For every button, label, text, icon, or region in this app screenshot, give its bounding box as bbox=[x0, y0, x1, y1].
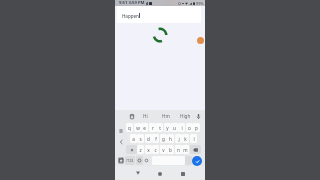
button[interactable]: Happen bbox=[117, 6, 201, 23]
button[interactable]: Enter bbox=[192, 156, 202, 166]
staticText: 99% bbox=[196, 1, 204, 6]
staticText: x bbox=[147, 147, 150, 153]
staticText: h bbox=[169, 136, 172, 142]
staticText: l bbox=[193, 136, 195, 142]
staticText: e bbox=[143, 125, 146, 131]
button[interactable]: p bbox=[193, 123, 200, 132]
staticText: j bbox=[178, 136, 180, 142]
button[interactable]: m bbox=[182, 145, 189, 154]
button[interactable]: f bbox=[152, 134, 159, 143]
button[interactable]: o bbox=[186, 123, 193, 132]
button[interactable]: y bbox=[164, 123, 171, 132]
button[interactable]: h bbox=[167, 134, 174, 143]
button[interactable]: c bbox=[152, 145, 159, 154]
button[interactable]: k bbox=[182, 134, 189, 143]
staticText: Hm bbox=[162, 113, 170, 119]
button[interactable]: e bbox=[141, 123, 148, 132]
button[interactable]: d bbox=[145, 134, 152, 143]
staticText: q bbox=[128, 125, 131, 131]
button[interactable]: Home bbox=[154, 168, 166, 180]
button[interactable]: Add bbox=[197, 37, 204, 44]
button[interactable]: r bbox=[149, 123, 156, 132]
staticText: b bbox=[169, 147, 172, 153]
button[interactable]: n bbox=[175, 145, 182, 154]
staticText: o bbox=[188, 125, 191, 131]
staticText: r bbox=[152, 125, 154, 131]
button[interactable]: Clipboard bbox=[128, 113, 135, 120]
staticText: m bbox=[183, 147, 188, 153]
staticText: s bbox=[139, 136, 142, 142]
staticText: Hi bbox=[143, 113, 148, 119]
button[interactable]: u bbox=[171, 123, 178, 132]
button[interactable]: j bbox=[175, 134, 182, 143]
button[interactable]: Back bbox=[132, 167, 144, 179]
staticText: n bbox=[177, 147, 180, 153]
staticText: High bbox=[180, 113, 191, 119]
button[interactable]: Voice input bbox=[195, 113, 202, 120]
staticText: z bbox=[139, 147, 142, 153]
staticText: w bbox=[136, 125, 140, 131]
staticText: ?123 bbox=[126, 158, 134, 163]
button[interactable]: Move keyboard bbox=[116, 126, 126, 136]
button[interactable]: High bbox=[177, 110, 193, 122]
button[interactable]: s bbox=[137, 134, 144, 143]
staticText: i bbox=[181, 125, 183, 131]
button[interactable]: Expand keyboard bbox=[116, 155, 126, 165]
staticText: u bbox=[173, 125, 176, 131]
button[interactable]: t bbox=[156, 123, 163, 132]
button[interactable]: Emoji bbox=[136, 156, 143, 165]
button[interactable]: Switch side bbox=[116, 137, 126, 147]
staticText: g bbox=[162, 136, 165, 142]
staticText: d bbox=[147, 136, 150, 142]
button[interactable]: Recents bbox=[177, 168, 189, 180]
staticText: p bbox=[195, 125, 198, 131]
button[interactable]: l bbox=[190, 134, 197, 143]
staticText: y bbox=[166, 125, 169, 131]
staticText: f bbox=[155, 136, 157, 142]
staticText: 9:51 3:59 PM bbox=[119, 0, 145, 6]
button[interactable]: Switch keyboard bbox=[118, 158, 123, 163]
button[interactable]: g bbox=[160, 134, 167, 143]
staticText: v bbox=[162, 147, 165, 153]
button[interactable]: Comma bbox=[143, 156, 150, 165]
button[interactable]: a bbox=[130, 134, 137, 143]
button[interactable]: Hm bbox=[158, 110, 174, 122]
button[interactable]: Backspace bbox=[190, 145, 201, 154]
staticText: t bbox=[159, 125, 161, 131]
button[interactable]: w bbox=[134, 123, 141, 132]
button[interactable]: Shift bbox=[126, 145, 137, 154]
button[interactable]: b bbox=[167, 145, 174, 154]
staticText: Happen bbox=[122, 13, 139, 19]
staticText: k bbox=[184, 136, 187, 142]
button[interactable]: v bbox=[160, 145, 167, 154]
button[interactable]: Hi bbox=[137, 110, 153, 122]
staticText: c bbox=[154, 147, 157, 153]
button[interactable]: q bbox=[126, 123, 133, 132]
button[interactable]: x bbox=[145, 145, 152, 154]
button[interactable]: ?123 bbox=[125, 156, 135, 165]
button[interactable]: i bbox=[178, 123, 185, 132]
button[interactable]: z bbox=[137, 145, 144, 154]
staticText: a bbox=[132, 136, 135, 142]
